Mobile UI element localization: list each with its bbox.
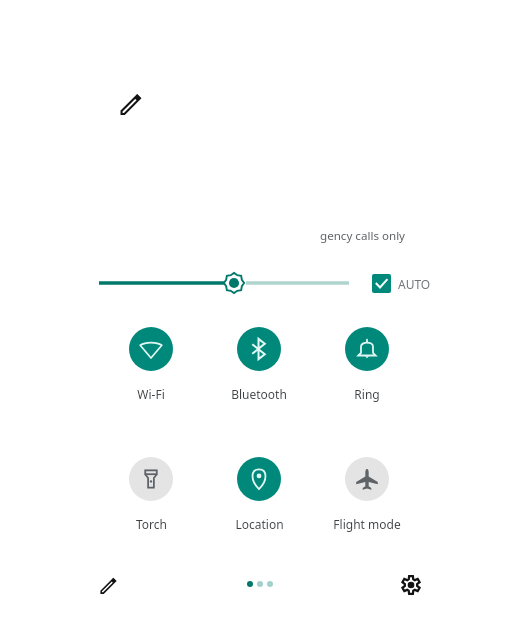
button[interactable]: AUTO: [372, 274, 431, 293]
button[interactable]: Bluetooth: [216, 327, 302, 402]
staticText: gency calls only: [320, 228, 406, 244]
staticText: Wi-Fi: [137, 386, 165, 402]
staticText: Location: [235, 516, 284, 532]
button[interactable]: Ring: [324, 327, 410, 402]
button[interactable]: Flight mode: [324, 457, 410, 532]
button[interactable]: Brightness: [90, 266, 358, 300]
button[interactable]: Location: [216, 457, 302, 532]
staticText: Flight mode: [333, 516, 401, 532]
button[interactable]: Edit: [114, 87, 148, 121]
button[interactable]: Wi-Fi: [108, 327, 194, 402]
button[interactable]: Edit: [91, 568, 125, 602]
staticText: Ring: [354, 386, 380, 402]
button[interactable]: Settings: [394, 568, 428, 602]
staticText: AUTO: [398, 276, 431, 292]
button[interactable]: Torch: [108, 457, 194, 532]
staticText: Torch: [136, 516, 167, 532]
staticText: Bluetooth: [231, 386, 287, 402]
